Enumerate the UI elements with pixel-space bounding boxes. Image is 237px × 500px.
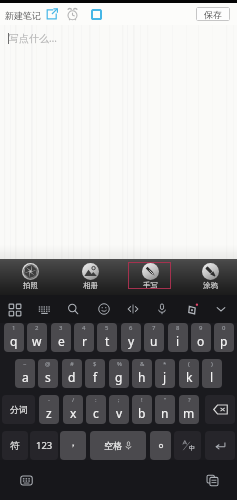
staticText: ( (188, 360, 190, 368)
staticText: 6 (129, 324, 133, 332)
staticText: j (163, 369, 167, 385)
button[interactable]: Themes (181, 295, 203, 323)
button[interactable]: 7 (144, 323, 164, 352)
button[interactable]: 4 (74, 323, 94, 352)
button[interactable]: 5 (97, 323, 117, 352)
button[interactable]: 8 (168, 323, 188, 352)
staticText: t (105, 333, 110, 349)
staticText: v (116, 405, 123, 421)
staticText: ) (211, 360, 213, 368)
button[interactable]: Checklist (89, 7, 103, 21)
button[interactable]: 空格 (90, 431, 146, 460)
button[interactable]: 2 (27, 323, 47, 352)
button[interactable]: @ (38, 359, 58, 388)
staticText: 中 (189, 444, 195, 452)
staticText: 2 (35, 324, 39, 332)
button[interactable]: Hide keyboard (210, 295, 232, 323)
button[interactable]: Period (150, 431, 171, 460)
staticText: g (115, 369, 123, 385)
staticText: s (45, 369, 51, 385)
button[interactable]: ~ (15, 359, 35, 388)
button[interactable]: Keyboard layout (33, 295, 55, 323)
button[interactable]: 符 (2, 431, 28, 460)
staticText: 123 (36, 439, 53, 452)
staticText: 5 (105, 324, 109, 332)
button[interactable]: ? (179, 395, 199, 424)
button[interactable]: Symbols (4, 295, 26, 323)
button[interactable]: # (62, 359, 82, 388)
button[interactable]: 分词 (2, 395, 35, 424)
button[interactable]: Voice input (151, 295, 173, 323)
button[interactable]: Switch language (174, 431, 201, 460)
button[interactable]: % (109, 359, 129, 388)
button[interactable]: 拍照 (8, 262, 51, 289)
button[interactable]: 123 (30, 431, 58, 460)
button[interactable]: Emoji (93, 295, 115, 323)
staticText: & (140, 360, 145, 368)
button[interactable]: ) (202, 359, 222, 388)
button[interactable]: 0 (214, 323, 234, 352)
button[interactable]: : (86, 395, 106, 424)
staticText: z (46, 405, 52, 421)
staticText: 新建笔记 (5, 10, 41, 21)
staticText: ! (141, 396, 143, 404)
button[interactable]: " (155, 395, 175, 424)
button[interactable]: 3 (51, 323, 71, 352)
button[interactable]: Backspace (205, 395, 235, 424)
button[interactable]: * (155, 359, 175, 388)
staticText: % (117, 360, 122, 368)
staticText: 9 (199, 324, 203, 332)
staticText: k (186, 369, 193, 385)
button[interactable]: ! (132, 395, 152, 424)
staticText: b (138, 405, 146, 421)
staticText: q (10, 333, 18, 349)
staticText: - (48, 396, 50, 404)
staticText: f (93, 369, 98, 385)
staticText: l (210, 369, 214, 385)
staticText: 保存 (204, 9, 222, 20)
staticText: 8 (176, 324, 180, 332)
staticText: d (68, 369, 76, 385)
staticText: ~ (23, 360, 27, 368)
button[interactable]: Comma (60, 431, 86, 460)
button[interactable]: 1 (4, 323, 24, 352)
staticText: x (70, 405, 77, 421)
staticText: 7 (152, 324, 156, 332)
staticText: " (164, 396, 167, 404)
staticText: 3 (59, 324, 63, 332)
button[interactable]: $ (85, 359, 105, 388)
button[interactable]: ; (109, 395, 129, 424)
button[interactable]: ( (179, 359, 199, 388)
staticText: 符 (10, 440, 20, 452)
button[interactable]: Keyboard (12, 466, 40, 494)
staticText: # (70, 360, 74, 368)
staticText: p (220, 333, 228, 349)
staticText: 分词 (10, 404, 28, 415)
button[interactable]: 手写 (128, 262, 171, 289)
button[interactable]: & (132, 359, 152, 388)
staticText: $ (93, 360, 97, 368)
staticText: 写点什么… (9, 31, 57, 45)
button[interactable]: - (39, 395, 59, 424)
staticText: e (58, 333, 65, 349)
staticText: * (163, 360, 167, 368)
staticText: : (95, 396, 97, 404)
button[interactable]: Set reminder (66, 8, 79, 21)
button[interactable]: Clipboard (198, 466, 226, 494)
button[interactable]: / (63, 395, 83, 424)
button[interactable]: Share note (46, 8, 58, 20)
staticText: ; (118, 396, 120, 404)
staticText: 0 (222, 324, 226, 332)
button[interactable]: Search (62, 295, 84, 323)
staticText: o (197, 333, 205, 349)
button[interactable]: 保存 (196, 7, 230, 21)
button[interactable]: 6 (121, 323, 141, 352)
staticText: 空格 (104, 440, 122, 451)
button[interactable]: Enter (205, 431, 235, 460)
button[interactable]: 涂鸦 (188, 262, 231, 289)
button[interactable]: 相册 (68, 262, 111, 289)
staticText: m (183, 405, 195, 421)
staticText: 1 (12, 324, 16, 332)
button[interactable]: 9 (191, 323, 211, 352)
button[interactable]: Move cursor (122, 295, 144, 323)
